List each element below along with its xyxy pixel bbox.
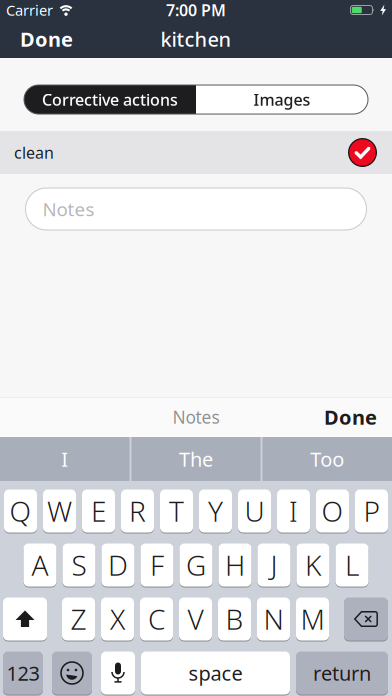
staticText: N [263,600,283,638]
button[interactable]: B [218,597,251,641]
staticText: 123 [6,660,39,686]
staticText: T [169,492,184,530]
staticText: X [110,600,125,638]
button[interactable]: Too [262,437,392,481]
staticText: L [345,546,359,584]
staticText: D [108,546,128,584]
staticText: I [61,446,68,472]
button[interactable] [101,651,135,695]
button[interactable]: Y [199,489,232,533]
staticText: S [71,546,86,584]
button[interactable]: return [296,651,388,695]
staticText: V [187,600,203,638]
button[interactable]: N [257,597,290,641]
button[interactable]: H [218,543,251,587]
staticText: Carrier [6,0,53,20]
button[interactable]: 123 [3,651,43,695]
staticText: R [129,492,146,530]
staticText: Done [324,404,377,430]
staticText: kitchen [160,26,231,52]
staticText: G [186,546,206,584]
staticText: return [313,660,371,686]
button[interactable] [52,651,92,695]
staticText: M [300,600,324,638]
staticText: P [363,492,379,530]
staticText: K [305,546,321,584]
button[interactable]: space [141,651,290,695]
button[interactable]: M [296,597,329,641]
staticText: clean [14,142,54,163]
button[interactable] [348,138,377,167]
staticText: Images [253,89,310,110]
staticText: O [321,492,343,530]
button[interactable]: K [296,543,329,587]
button[interactable]: E [82,489,115,533]
button[interactable]: F [140,543,173,587]
staticText: H [225,546,245,584]
button[interactable]: X [101,597,134,641]
staticText: B [225,600,243,638]
staticText: U [244,492,264,530]
button[interactable]: The [131,437,260,481]
staticText: Done [20,26,73,52]
button[interactable]: G [179,543,212,587]
button[interactable]: V [179,597,212,641]
button[interactable]: Z [62,597,95,641]
button[interactable]: C [140,597,173,641]
button[interactable]: J [257,543,290,587]
staticText: 7:00 PM [166,0,226,21]
button[interactable]: Done [324,404,377,430]
button[interactable]: Images [196,85,368,114]
button[interactable]: Q [4,489,37,533]
staticText: Notes [172,405,219,428]
staticText: F [150,546,164,584]
button[interactable]: Corrective actions [24,85,196,114]
button[interactable]: T [160,489,193,533]
staticText: A [31,546,48,584]
staticText: Y [208,492,223,530]
button[interactable]: S [62,543,95,587]
button[interactable]: U [238,489,271,533]
staticText: Corrective actions [42,89,178,110]
button[interactable]: I [277,489,310,533]
staticText: Z [70,600,86,638]
staticText: J [270,546,277,584]
staticText: space [188,660,242,686]
button[interactable]: A [23,543,56,587]
button[interactable]: P [355,489,388,533]
staticText: E [91,492,106,530]
staticText: The [179,446,213,472]
staticText: C [148,600,165,638]
staticText: I [289,492,298,530]
button[interactable]: W [43,489,76,533]
button[interactable]: L [335,543,368,587]
staticText: Q [9,492,31,530]
button[interactable]: I [0,437,129,481]
button[interactable] [344,597,388,641]
button[interactable]: Done [20,26,73,52]
button[interactable] [3,597,47,641]
button[interactable]: O [316,489,349,533]
staticText: Notes [42,197,94,221]
button[interactable]: R [121,489,154,533]
staticText: Too [310,446,344,472]
button[interactable]: D [101,543,134,587]
button[interactable]: Notes [25,188,366,230]
staticText: W [47,492,72,530]
